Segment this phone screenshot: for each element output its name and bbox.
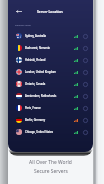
button[interactable]: Amsterdam, Netherlands	[8, 90, 93, 102]
staticText: Premium Server	[15, 24, 31, 27]
staticText: Helsinki, Finland	[25, 58, 74, 62]
staticText: London, United Kingdom	[25, 70, 74, 74]
button[interactable]: Chicago, United States	[8, 126, 93, 138]
staticText: All Over The World	[29, 159, 72, 166]
staticText: Server Location	[37, 9, 63, 14]
button[interactable]: Back	[12, 5, 25, 18]
button[interactable]: Ontario, Canada	[8, 78, 93, 90]
staticText: Ontario, Canada	[25, 82, 74, 86]
button[interactable]: Paris, France	[8, 102, 93, 114]
staticText: Chicago, United States	[25, 130, 74, 134]
staticText: Bucharest, Romania	[25, 46, 74, 50]
button[interactable]: Helsinki, Finland	[8, 54, 93, 66]
staticText: Berlin, Germany	[25, 118, 74, 122]
button[interactable]: Berlin, Germany	[8, 114, 93, 126]
button[interactable]: London, United Kingdom	[8, 66, 93, 78]
button[interactable]: Bucharest, Romania	[8, 42, 93, 54]
staticText: Amsterdam, Netherlands	[25, 94, 74, 98]
staticText: Paris, France	[25, 106, 74, 110]
staticText: Sydney, Australia	[25, 34, 74, 38]
staticText: Secure Servers	[34, 168, 68, 175]
button[interactable]: Sydney, Australia	[8, 30, 93, 42]
